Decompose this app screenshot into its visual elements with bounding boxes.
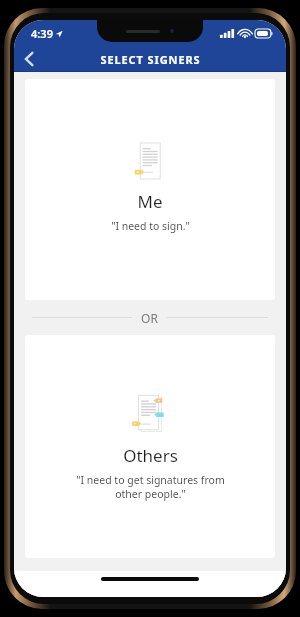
staticText: other people." xyxy=(115,487,186,501)
staticText: Me xyxy=(137,190,163,213)
button[interactable]: Back xyxy=(14,46,44,72)
staticText: 4:39 xyxy=(31,26,53,41)
button[interactable]: Others xyxy=(25,335,275,558)
staticText: Others xyxy=(123,444,178,467)
button[interactable]: Me xyxy=(25,79,275,300)
staticText: SELECT SIGNERS xyxy=(100,52,201,67)
staticText: OR xyxy=(141,310,158,326)
staticText: "I need to get signatures from xyxy=(76,473,225,487)
staticText: "I need to sign." xyxy=(111,219,190,233)
